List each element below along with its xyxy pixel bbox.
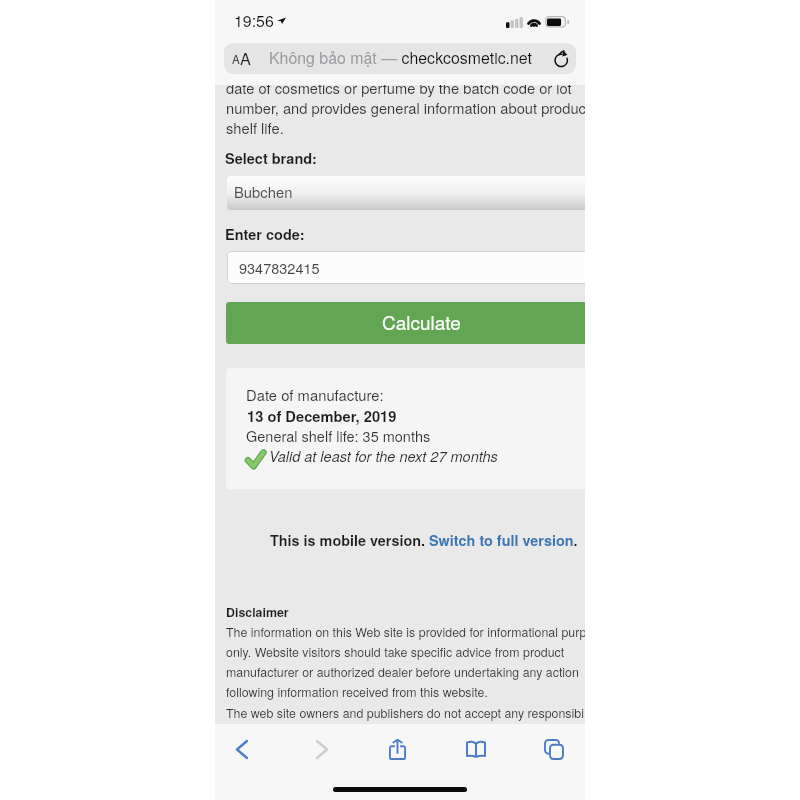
staticText: Không bảo mật — checkcosmetic.net bbox=[269, 46, 532, 69]
staticText: Disclaimer bbox=[226, 603, 289, 621]
staticText: Enter code: bbox=[225, 224, 305, 245]
button[interactable]: Bookmarks bbox=[453, 728, 499, 771]
staticText: following information received from this… bbox=[226, 683, 488, 701]
staticText: 9347832415 bbox=[239, 257, 320, 278]
button[interactable]: Forward bbox=[304, 728, 340, 771]
button[interactable]: Share bbox=[376, 726, 419, 773]
staticText: A bbox=[240, 46, 251, 69]
button[interactable]: Bubchen bbox=[227, 176, 585, 210]
staticText: Bubchen bbox=[234, 181, 293, 202]
staticText: The information on this Web site is prov… bbox=[226, 623, 585, 641]
staticText: The web site owners and publishers do no… bbox=[226, 704, 584, 722]
staticText: 13 of December, 2019 bbox=[247, 405, 397, 426]
staticText: Valid at least for the next 27 months bbox=[269, 446, 498, 466]
staticText: This is mobile version. Switch to full v… bbox=[270, 530, 578, 551]
staticText: General shelf life: 35 months bbox=[246, 425, 431, 446]
staticText: Date of manufacture: bbox=[246, 384, 384, 405]
staticText: manufacturer or authorized dealer before… bbox=[226, 663, 579, 681]
button[interactable]: 9347832415 bbox=[227, 251, 585, 284]
staticText: Select brand: bbox=[225, 148, 317, 169]
button[interactable]: Calculate bbox=[226, 302, 585, 344]
staticText: only. Website visitors should take speci… bbox=[226, 643, 565, 661]
staticText: shelf life. bbox=[226, 117, 284, 138]
other: Reload page bbox=[554, 50, 569, 68]
button[interactable]: This is mobile version. Switch to full v… bbox=[270, 530, 578, 551]
staticText: Calculate bbox=[382, 308, 461, 335]
staticText: 19:56 bbox=[234, 9, 274, 32]
button[interactable]: Tabs bbox=[531, 726, 577, 773]
button[interactable]: A bbox=[224, 43, 576, 74]
staticText: date of cosmetics or perfume by the batc… bbox=[226, 85, 572, 98]
staticText: number, and provides general information… bbox=[226, 97, 585, 118]
staticText: A bbox=[232, 51, 240, 68]
button[interactable]: Back bbox=[224, 728, 260, 771]
